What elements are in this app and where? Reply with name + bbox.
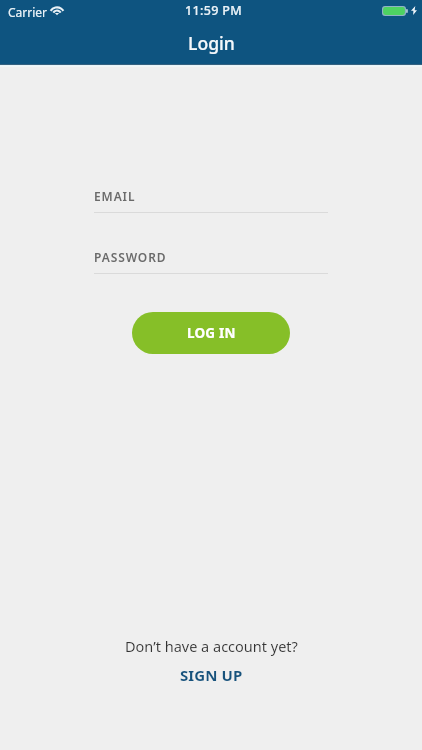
staticText: SIGN UP: [180, 665, 243, 685]
staticText: 11:59 PM: [185, 2, 243, 19]
button[interactable]: PASSWORD: [94, 243, 328, 274]
staticText: EMAIL: [94, 188, 136, 204]
staticText: LOG IN: [187, 324, 236, 342]
staticText: Don’t have a account yet?: [125, 636, 298, 656]
button[interactable]: LOG IN: [132, 312, 290, 354]
staticText: Login: [188, 31, 235, 55]
button[interactable]: EMAIL: [94, 182, 328, 213]
button[interactable]: SIGN UP: [172, 662, 251, 688]
other: Wi-Fi signal: [50, 5, 64, 15]
other: Battery charging: [382, 6, 417, 16]
staticText: Carrier: [8, 4, 48, 20]
staticText: PASSWORD: [94, 249, 167, 265]
